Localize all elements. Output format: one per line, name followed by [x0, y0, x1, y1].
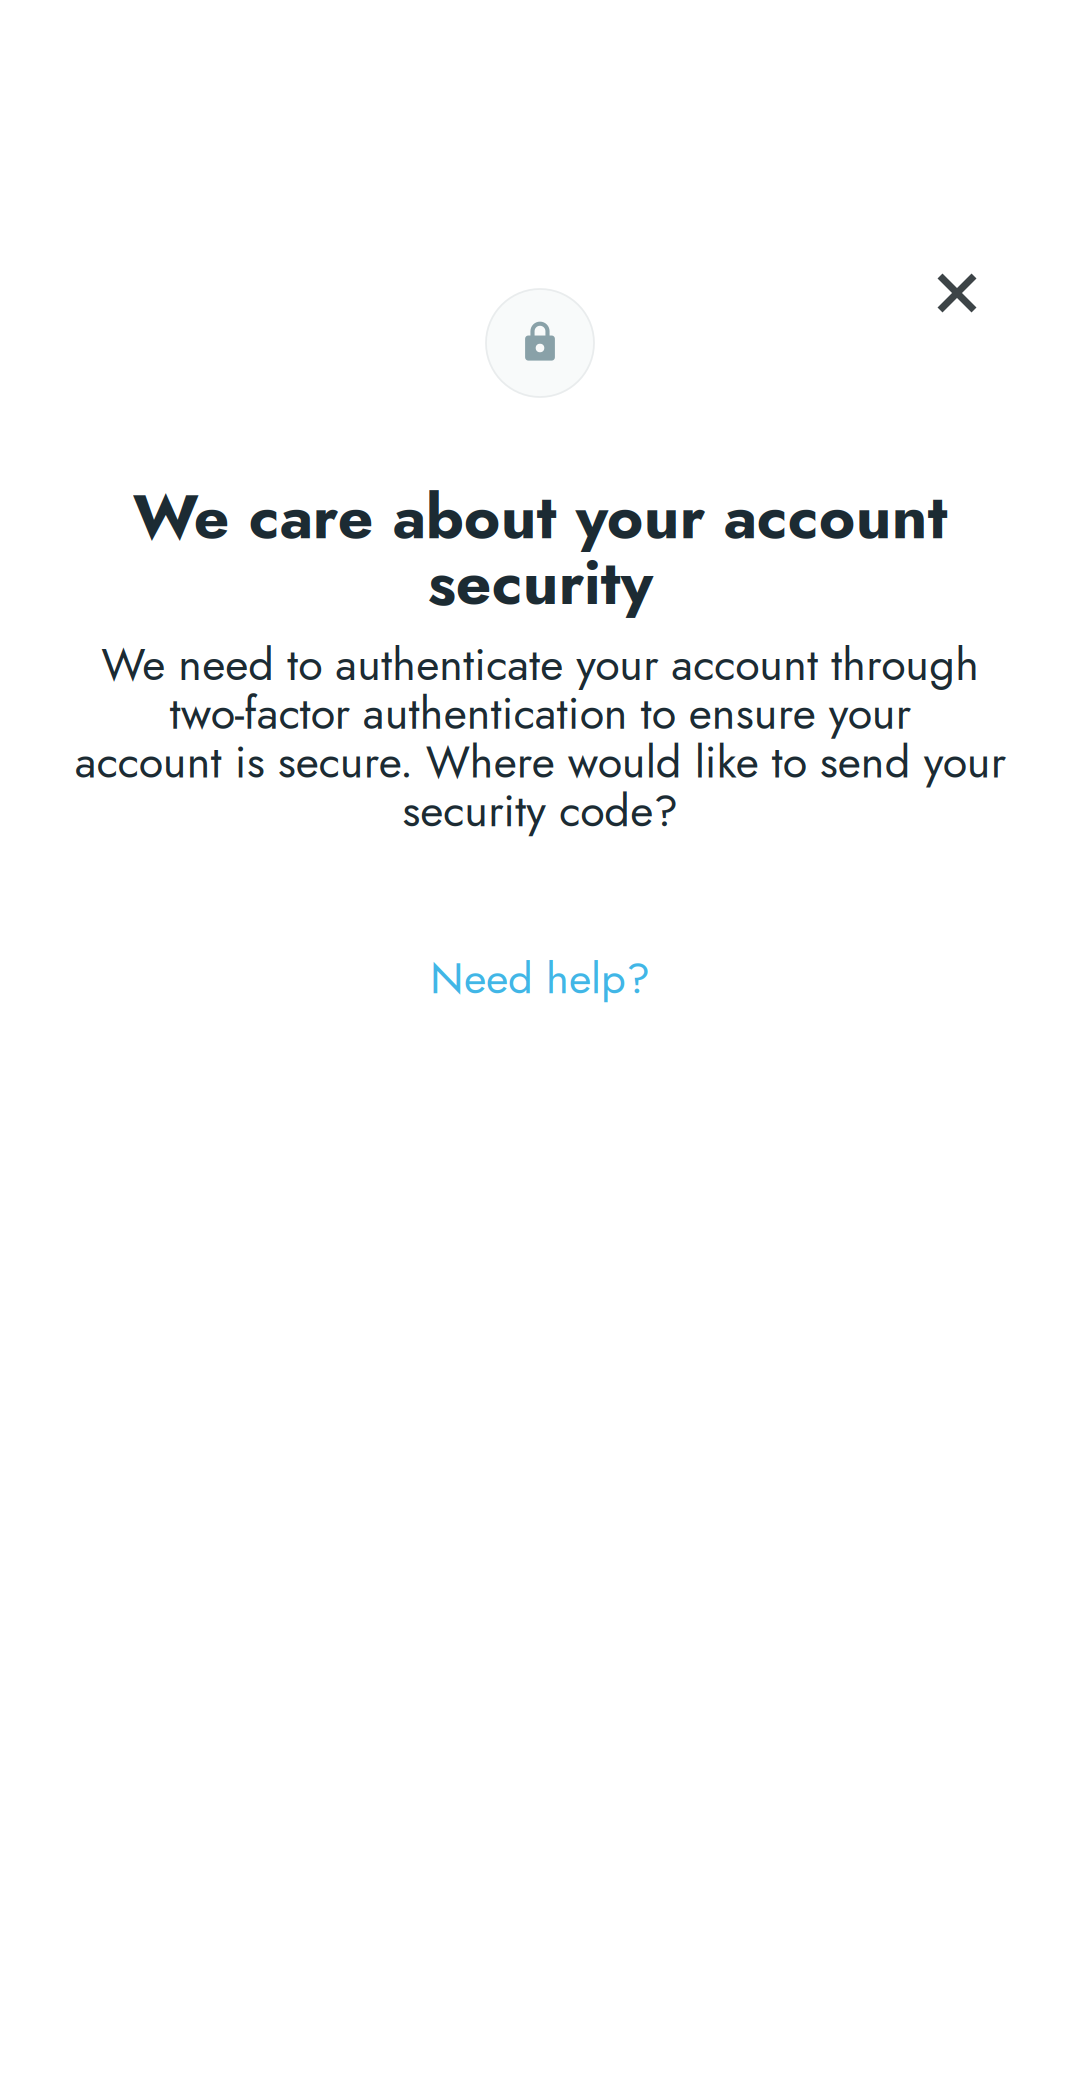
button[interactable]: Need help?: [404, 933, 676, 1024]
staticText: We need to authenticate your account thr…: [74, 632, 1005, 843]
staticText: We care about your account security: [132, 472, 947, 627]
button[interactable]: Close: [909, 245, 1005, 341]
staticText: Need help?: [430, 947, 650, 1010]
